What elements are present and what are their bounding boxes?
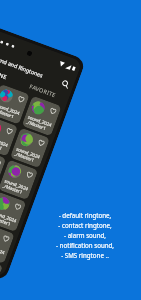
staticText: sound_2024 _/Master1 xyxy=(0,209,17,228)
other: Favorite xyxy=(2,234,11,243)
button[interactable]: Favorite xyxy=(0,84,30,125)
button[interactable]: Favorite xyxy=(10,127,50,168)
staticText: sound_2024 _/Master1 xyxy=(0,102,21,121)
staticText: sound_2024 _/Master1 xyxy=(25,113,53,132)
button[interactable]: Favorite xyxy=(0,255,3,274)
staticText: sound_2024 _/Master1 xyxy=(0,241,6,260)
other: Favorite xyxy=(0,159,2,168)
button[interactable]: Favorite xyxy=(22,96,62,136)
staticText: sound_2024 _/Master1 xyxy=(2,177,29,196)
staticText: sound_2024 _/Master1 xyxy=(14,145,41,164)
button[interactable]: Search xyxy=(58,77,72,91)
other: Favorite xyxy=(5,127,14,136)
staticText: RINGTONE xyxy=(0,63,9,81)
button[interactable]: RINGTONE xyxy=(0,56,20,87)
other: Favorite xyxy=(25,170,34,179)
other: Favorite xyxy=(17,95,26,104)
staticText: Super Sound and Ringtones xyxy=(0,48,44,79)
button[interactable]: Favorite xyxy=(0,159,38,200)
button[interactable]: FAVORITE xyxy=(15,75,71,106)
other: Favorite xyxy=(13,202,22,211)
button[interactable]: Favorite xyxy=(0,116,18,156)
button[interactable]: Favorite xyxy=(0,223,15,264)
staticText: FAVORITE xyxy=(29,82,57,98)
other: Favorite xyxy=(48,107,57,116)
staticText: sound_2024 _/Master1 xyxy=(0,134,9,153)
button[interactable]: Favorite xyxy=(0,191,26,232)
other: Favorite xyxy=(37,138,46,147)
button[interactable]: Favorite xyxy=(0,148,6,188)
staticText: - default ringtone, - contact ringtone, … xyxy=(56,211,114,259)
